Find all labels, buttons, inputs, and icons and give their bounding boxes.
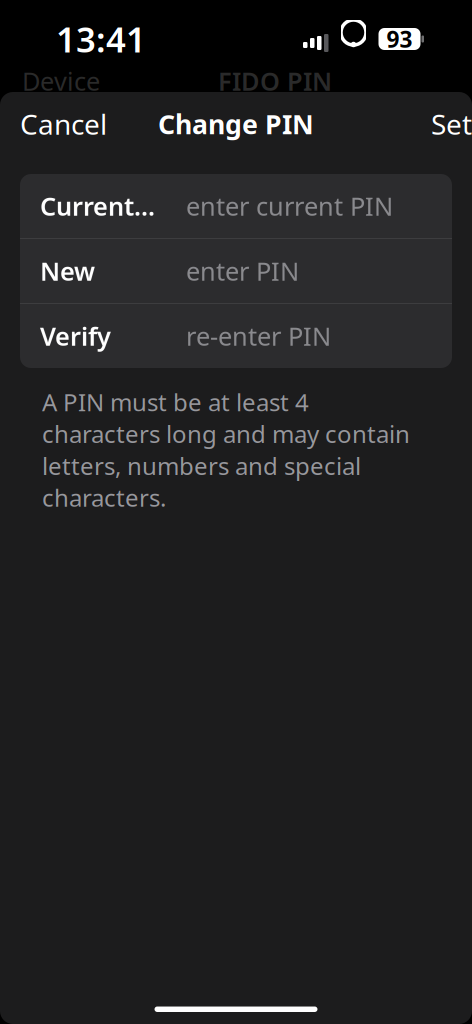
staticText: re-enter PIN bbox=[186, 319, 331, 353]
button[interactable]: New bbox=[20, 239, 452, 303]
staticText: Cancel bbox=[20, 105, 107, 143]
staticText: Change PIN bbox=[158, 106, 314, 142]
button[interactable]: Set bbox=[411, 96, 472, 152]
staticText: Current... bbox=[40, 189, 155, 223]
staticText: A PIN must be at least 4 characters long… bbox=[42, 386, 410, 513]
staticText: Set bbox=[431, 105, 472, 143]
button[interactable]: Verify bbox=[20, 304, 452, 368]
staticText: 93 bbox=[386, 24, 412, 54]
staticText: New bbox=[40, 254, 95, 288]
button[interactable]: Current... bbox=[20, 174, 452, 238]
staticText: enter current PIN bbox=[186, 189, 393, 223]
staticText: enter PIN bbox=[186, 254, 299, 288]
staticText: Device bbox=[22, 64, 100, 98]
staticText: Verify bbox=[40, 319, 111, 353]
staticText: FIDO PIN bbox=[218, 64, 332, 98]
staticText: 13:41 bbox=[56, 16, 146, 62]
button[interactable]: Cancel bbox=[0, 96, 127, 152]
